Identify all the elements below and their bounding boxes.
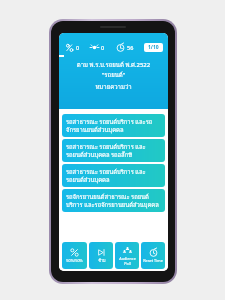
button[interactable]: รถจักรยานยนต์สาธารณะ รถยนต์บริการ และรถจ… [62, 189, 165, 212]
staticText: 50%/50% [66, 258, 83, 263]
other: Timer [116, 43, 125, 52]
staticText: 1/10 [148, 44, 159, 51]
other: Views [90, 43, 99, 52]
staticText: รถสาธารณะ รถยนต์บริการ และรถยนต์ส่วนบุคค… [66, 167, 161, 184]
button[interactable]: รถสาธารณะ รถยนต์บริการ และรถจักรยานยนต์ส… [62, 114, 165, 137]
staticText: 56 [127, 44, 134, 51]
button[interactable]: ข้าม [89, 242, 113, 269]
button[interactable]: 1/10 [144, 43, 163, 52]
staticText: รถสาธารณะ รถยนต์บริการ และรถยนต์ส่วนบุคค… [66, 142, 161, 160]
staticText: หมายความว่า [95, 82, 132, 92]
button[interactable]: 50%/50% [62, 242, 87, 269]
button[interactable]: Timer [115, 43, 135, 52]
button[interactable]: Views [89, 43, 106, 52]
button[interactable]: รถสาธารณะ รถยนต์บริการ และรถยนต์ส่วนบุคค… [62, 164, 165, 187]
button[interactable]: Hands [64, 43, 81, 52]
staticText: ตาม พ.ร.บ.รถยนต์ พ.ศ.2522 "รถยนต์" [67, 60, 160, 80]
staticText: ข้าม [98, 258, 106, 264]
staticText: Audience Poll [119, 256, 136, 266]
staticText: 0 [76, 44, 80, 51]
staticText: 0 [101, 44, 105, 51]
staticText: รถจักรยานยนต์สาธารณะ รถยนต์บริการ และรถจ… [66, 192, 161, 210]
button[interactable]: Audience Poll [115, 242, 139, 269]
button[interactable]: Reset Time [141, 242, 165, 269]
button[interactable]: รถสาธารณะ รถยนต์บริการ และรถยนต์ส่วนบุคค… [62, 139, 165, 162]
staticText: Reset Time [143, 258, 163, 263]
other: Hands [65, 43, 74, 52]
staticText: รถสาธารณะ รถยนต์บริการ และรถจักรยานยนต์ส… [66, 117, 161, 134]
